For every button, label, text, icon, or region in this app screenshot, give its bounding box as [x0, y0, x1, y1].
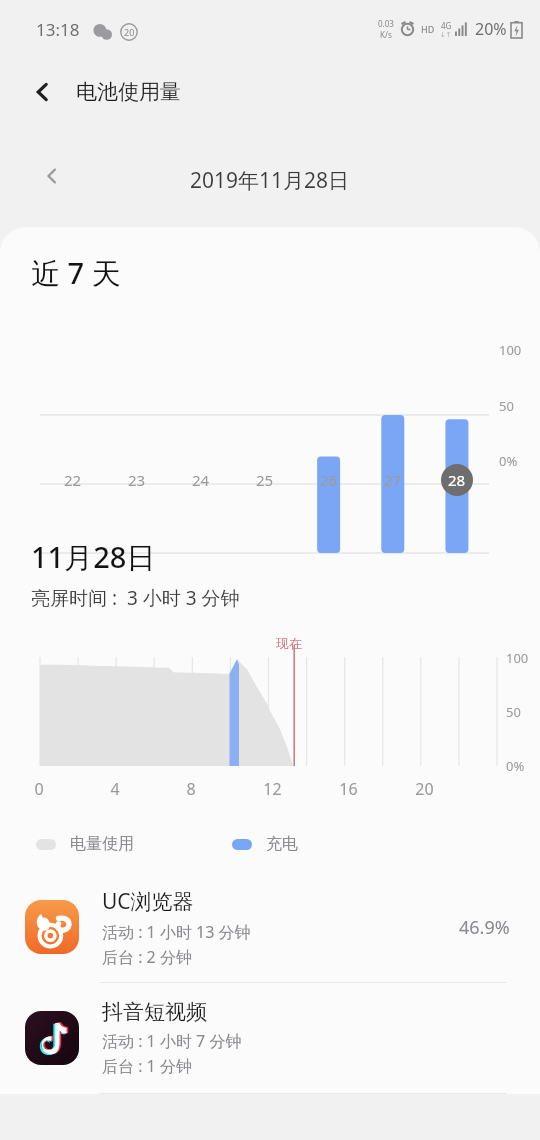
- staticText: 28: [448, 470, 466, 490]
- staticText: 0%: [499, 452, 518, 470]
- button[interactable]: 返回: [22, 71, 64, 113]
- staticText: 后台 : 1 分钟: [102, 1055, 192, 1077]
- staticText: 抖音短视频: [102, 999, 207, 1025]
- staticText: 13:18: [36, 18, 80, 41]
- staticText: 0%: [506, 757, 525, 775]
- staticText: 11月28日: [31, 537, 156, 577]
- button[interactable]: 28: [441, 464, 473, 496]
- staticText: 0: [34, 778, 44, 800]
- staticText: 20: [415, 778, 434, 800]
- button[interactable]: 24: [192, 470, 210, 490]
- staticText: 20: [124, 26, 135, 38]
- button[interactable]: 抖音短视频: [0, 983, 540, 1094]
- staticText: 4: [110, 778, 120, 800]
- staticText: 50: [506, 703, 521, 721]
- staticText: 100: [506, 649, 529, 667]
- staticText: 近 7 天: [31, 253, 121, 293]
- staticText: 16: [339, 778, 358, 800]
- staticText: 12: [263, 778, 282, 800]
- button[interactable]: 26: [320, 470, 338, 490]
- staticText: 50: [499, 397, 514, 415]
- staticText: 充电: [266, 834, 298, 854]
- button[interactable]: 22: [64, 470, 82, 490]
- staticText: ↓↑: [440, 31, 452, 39]
- button[interactable]: 25: [256, 470, 274, 490]
- staticText: 后台 : 2 分钟: [102, 946, 192, 968]
- staticText: HD: [421, 23, 435, 35]
- button[interactable]: UC浏览器: [0, 872, 540, 983]
- staticText: 活动 : 1 小时 7 分钟: [102, 1030, 242, 1052]
- staticText: 电池使用量: [76, 79, 181, 105]
- staticText: 100: [499, 341, 522, 359]
- staticText: 4G: [441, 20, 452, 31]
- staticText: 8: [186, 778, 196, 800]
- staticText: 活动 : 1 小时 13 分钟: [102, 921, 251, 943]
- button[interactable]: 前一天: [30, 154, 74, 198]
- staticText: K/s: [380, 29, 392, 40]
- button[interactable]: 23: [128, 470, 146, 490]
- staticText: 20%: [475, 18, 507, 40]
- staticText: 0.03: [378, 18, 394, 29]
- button[interactable]: 27: [384, 470, 402, 490]
- staticText: 电量使用: [70, 834, 134, 854]
- staticText: 2019年11月28日: [190, 166, 350, 195]
- staticText: UC浏览器: [102, 887, 194, 916]
- staticText: 46.9%: [459, 915, 510, 940]
- staticText: 亮屏时间 : 3 小时 3 分钟: [31, 585, 240, 611]
- staticText: 现在: [276, 635, 302, 651]
